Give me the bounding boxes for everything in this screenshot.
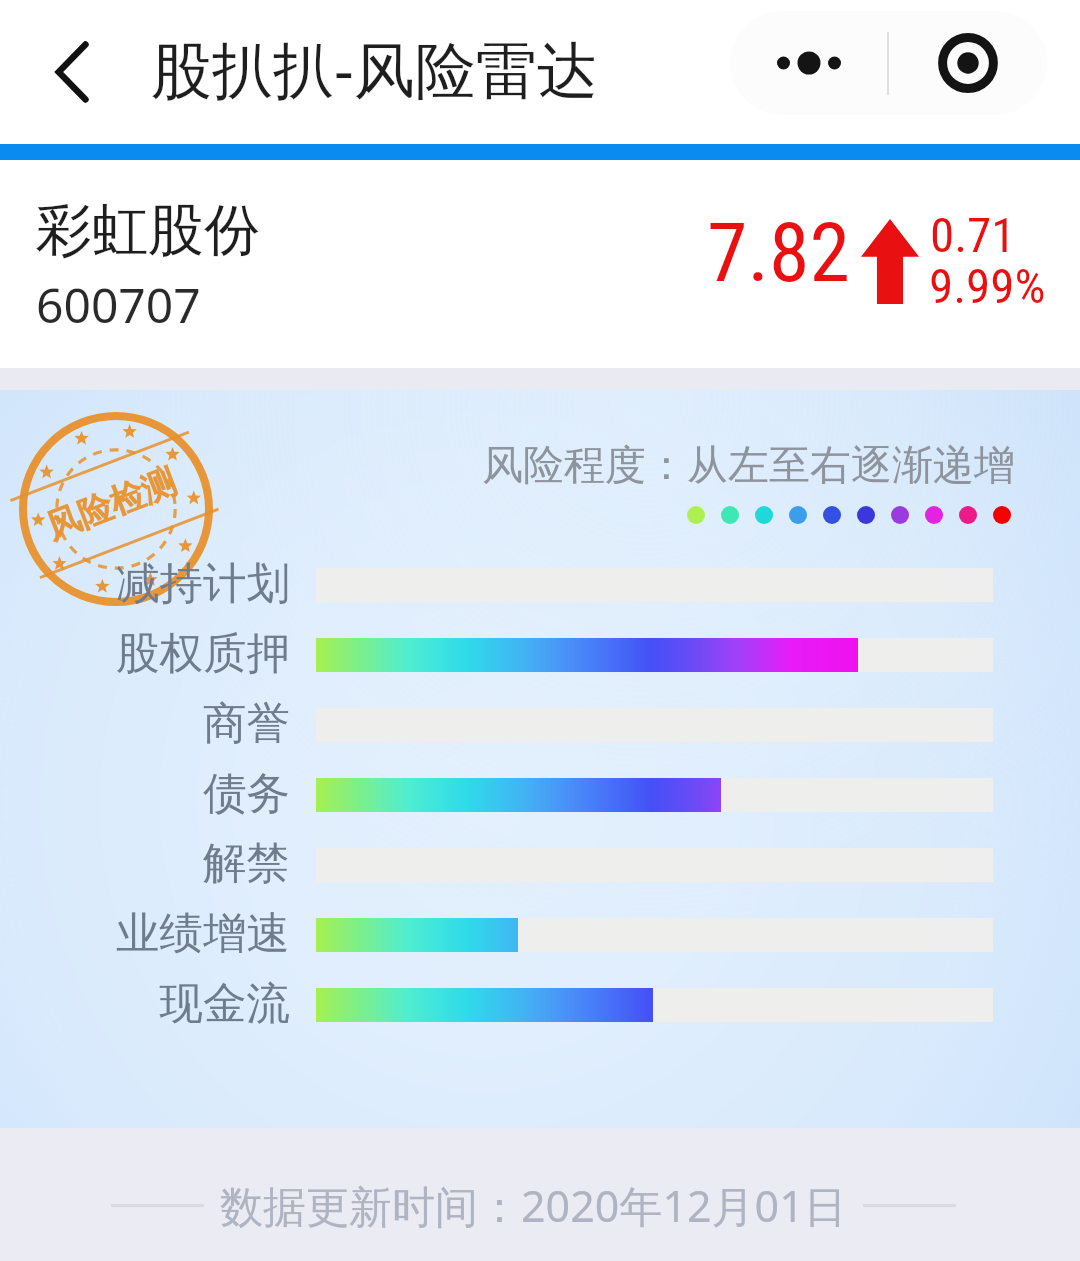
- staticText: 商誉: [0, 696, 290, 751]
- staticText: 9.99%: [929, 258, 1046, 315]
- staticText: 业绩增速: [0, 906, 290, 961]
- staticText: 股权质押: [0, 626, 290, 681]
- button[interactable]: 商誉: [0, 690, 1080, 760]
- staticText: 风险程度：从左至右逐渐递增: [482, 440, 1015, 492]
- button[interactable]: 业绩增速: [0, 900, 1080, 970]
- staticText: 彩虹股份: [36, 195, 260, 266]
- button[interactable]: More: [730, 11, 887, 115]
- staticText: 减持计划: [0, 556, 290, 611]
- staticText: 7.82: [707, 205, 851, 301]
- staticText: 风险检测: [40, 460, 182, 549]
- staticText: 现金流: [0, 976, 290, 1031]
- button[interactable]: Close mini program: [889, 11, 1047, 115]
- staticText: 解禁: [0, 836, 290, 891]
- staticText: 股扒扒-风险雷达: [151, 27, 598, 110]
- button[interactable]: Back: [26, 18, 134, 126]
- button[interactable]: 减持计划: [0, 550, 1080, 620]
- staticText: 600707: [36, 272, 201, 337]
- staticText: 债务: [0, 766, 290, 821]
- button[interactable]: 股权质押: [0, 620, 1080, 690]
- button[interactable]: 现金流: [0, 970, 1080, 1040]
- staticText: 数据更新时间：2020年12月01日: [220, 1176, 847, 1235]
- button[interactable]: 解禁: [0, 830, 1080, 900]
- staticText: 0.71: [930, 207, 1016, 264]
- button[interactable]: 债务: [0, 760, 1080, 830]
